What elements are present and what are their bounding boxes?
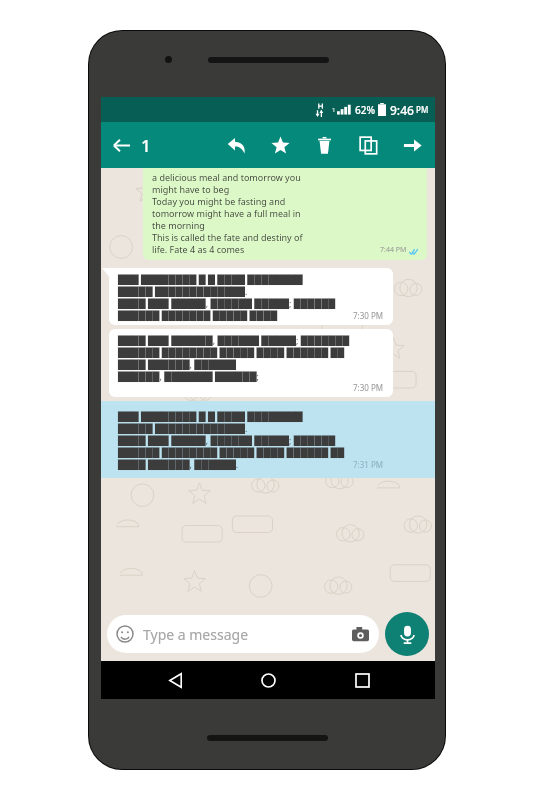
button[interactable]: ████ ███ ██████, ██████ █████; ███████ — [109, 329, 393, 397]
staticText: 7:31 PM — [353, 459, 384, 470]
staticText: ██████ ███████ █████ ████ — [118, 309, 278, 321]
staticText: ██████ ████████ █████ ████ ██████ ██ — [118, 446, 345, 458]
button[interactable]: Back — [155, 661, 195, 699]
staticText: ███ ████████ █ █ ████ ████████ — [118, 410, 303, 422]
staticText: life. Fate 4 as 4 comes — [152, 243, 245, 255]
button[interactable]: Forward — [395, 128, 429, 162]
staticText: might have to beg — [152, 183, 230, 195]
staticText: Today you might be fasting and — [152, 195, 286, 207]
staticText: Type a message — [143, 625, 249, 644]
staticText: a delicious meal and tomorrow you — [152, 171, 301, 183]
staticText: ████ ██████, ██████ — [118, 358, 236, 370]
button[interactable]: Delete — [307, 128, 341, 162]
staticText: 9:46 — [390, 102, 414, 118]
button[interactable]: Voice message — [385, 612, 429, 656]
staticText: This is called the fate and destiny of — [152, 231, 303, 243]
staticText: ████ ███ █████, ██████ █████; ██████ — [118, 297, 336, 309]
staticText: 1 — [332, 106, 336, 114]
staticText: ████ ██████, ██████. — [118, 458, 239, 470]
staticText: █████ █████████████. — [118, 422, 248, 434]
button[interactable]: Type a message — [107, 615, 379, 653]
staticText: 7:30 PM — [353, 310, 384, 321]
staticText: ██████, ███████ ██████; — [118, 370, 260, 382]
staticText: ███ ████████ █ █ ████ ████████ — [118, 273, 303, 285]
staticText: PM — [416, 104, 429, 115]
button[interactable]: a delicious meal and tomorrow you — [143, 168, 427, 260]
button[interactable]: Camera — [350, 624, 370, 644]
button[interactable]: Back — [101, 122, 141, 168]
button[interactable]: Copy — [351, 128, 385, 162]
button[interactable]: ███ ████████ █ █ ████ ████████ — [109, 405, 393, 474]
button[interactable]: Recent apps — [342, 661, 382, 699]
staticText: tomorrow might have a full meal in — [152, 207, 301, 219]
button[interactable]: Reply — [219, 128, 253, 162]
staticText: █████ █████████████. — [118, 285, 248, 297]
button[interactable]: Home — [248, 661, 288, 699]
staticText: 7:44 PM — [380, 245, 407, 255]
button[interactable]: ███ ████████ █ █ ████ ████████ — [109, 268, 393, 325]
staticText: 7:30 PM — [353, 382, 384, 393]
staticText: ██████ ████████ █████ ████ ██████ ██ — [118, 346, 345, 358]
button[interactable]: Star — [263, 128, 297, 162]
staticText: 1 — [141, 134, 151, 157]
staticText: the morning — [152, 219, 205, 231]
staticText: ████ ███ █████, ██████ █████; ██████ — [118, 434, 336, 446]
staticText: ████ ███ ██████, ██████ █████; ███████ — [118, 334, 350, 346]
staticText: 62% — [355, 103, 375, 117]
